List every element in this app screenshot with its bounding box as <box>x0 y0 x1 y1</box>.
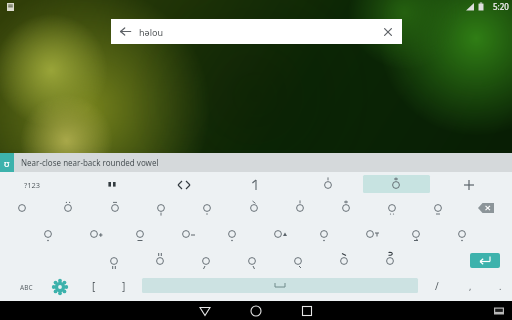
button[interactable]: Keyboard key <box>371 197 418 223</box>
button[interactable]: Keyboard key <box>138 223 184 249</box>
button[interactable]: Keyboard key <box>92 249 138 275</box>
button[interactable]: Keyboard key <box>184 197 230 223</box>
button[interactable]: Keyboard key <box>371 249 418 275</box>
staticText: ] <box>122 279 126 293</box>
button[interactable]: Keyboard key <box>230 249 277 275</box>
button[interactable]: Keyboard key <box>0 223 46 249</box>
button[interactable]: Keyboard key <box>277 197 324 223</box>
button[interactable]: Keyboard key <box>0 197 46 223</box>
button[interactable]: Keyboard key <box>184 172 230 197</box>
button[interactable]: Back <box>197 303 213 319</box>
button[interactable]: Keyboard key <box>46 275 92 301</box>
button[interactable]: Home <box>248 303 264 319</box>
button[interactable]: Keyboard key <box>92 275 138 301</box>
button[interactable]: Keyboard key <box>324 249 371 275</box>
staticText: [ <box>92 279 96 293</box>
button[interactable]: Keyboard key <box>277 223 324 249</box>
button[interactable]: Keyboard key <box>418 223 465 249</box>
button[interactable]: Keyboard key <box>277 249 324 275</box>
button[interactable]: Keyboard key <box>184 275 230 301</box>
staticText: , <box>469 280 472 292</box>
button[interactable]: Keyboard key <box>371 172 418 197</box>
button[interactable]: Phonetic symbol <box>0 153 14 172</box>
button[interactable]: Keyboard key <box>465 275 512 301</box>
button[interactable]: Keyboard key <box>418 275 465 301</box>
staticText: Near-close near-back rounded vowel <box>21 157 159 168</box>
button[interactable]: Clear <box>374 19 402 44</box>
button[interactable]: Keyboard key <box>0 275 46 301</box>
button[interactable]: Keyboard key <box>465 223 512 249</box>
button[interactable]: Keyboard key <box>465 197 512 223</box>
button[interactable]: Keyboard key <box>230 223 277 249</box>
button[interactable]: Keyboard key <box>138 275 184 301</box>
button[interactable]: Keyboard key <box>46 223 92 249</box>
button[interactable]: Keyboard key <box>92 197 138 223</box>
staticText: ?123 <box>24 180 41 190</box>
staticText: ʊ <box>4 157 10 169</box>
button[interactable]: Keyboard key <box>92 223 138 249</box>
button[interactable]: Keyboard key <box>371 223 418 249</box>
staticText: / <box>435 279 439 293</box>
button[interactable]: Keyboard key <box>465 249 512 275</box>
button[interactable]: Keyboard key <box>184 223 230 249</box>
button[interactable]: Keyboard key <box>230 275 277 301</box>
button[interactable]: Keyboard key <box>138 249 184 275</box>
button[interactable]: Keyboard key <box>230 172 277 197</box>
button[interactable]: Keyboard key <box>46 197 92 223</box>
button[interactable]: Keyboard key <box>277 275 324 301</box>
button[interactable]: Keyboard key <box>138 197 184 223</box>
staticText: . <box>499 280 502 292</box>
button[interactable]: Keyboard key <box>230 197 277 223</box>
button[interactable]: Switch keyboard <box>491 303 507 319</box>
button[interactable]: Keyboard key <box>138 172 184 197</box>
button[interactable]: Recent apps <box>299 303 315 319</box>
staticText: həlou <box>139 26 374 38</box>
button[interactable]: Keyboard key <box>418 172 465 197</box>
button[interactable]: Keyboard key <box>324 197 371 223</box>
staticText: 5:20 <box>493 1 509 12</box>
button[interactable]: Keyboard key <box>465 172 512 197</box>
button[interactable]: Near-close near-back rounded vowel <box>14 153 512 172</box>
staticText: ABC <box>20 283 33 292</box>
button[interactable]: Back <box>111 19 139 44</box>
button[interactable]: Keyboard key <box>418 197 465 223</box>
button[interactable]: Keyboard key <box>324 223 371 249</box>
button[interactable]: Keyboard key <box>371 275 418 301</box>
button[interactable]: Keyboard key <box>324 275 371 301</box>
button[interactable]: Keyboard key <box>184 249 230 275</box>
button[interactable]: Keyboard key <box>324 172 371 197</box>
button[interactable]: Keyboard key <box>0 172 46 197</box>
button[interactable]: Keyboard key <box>92 172 138 197</box>
